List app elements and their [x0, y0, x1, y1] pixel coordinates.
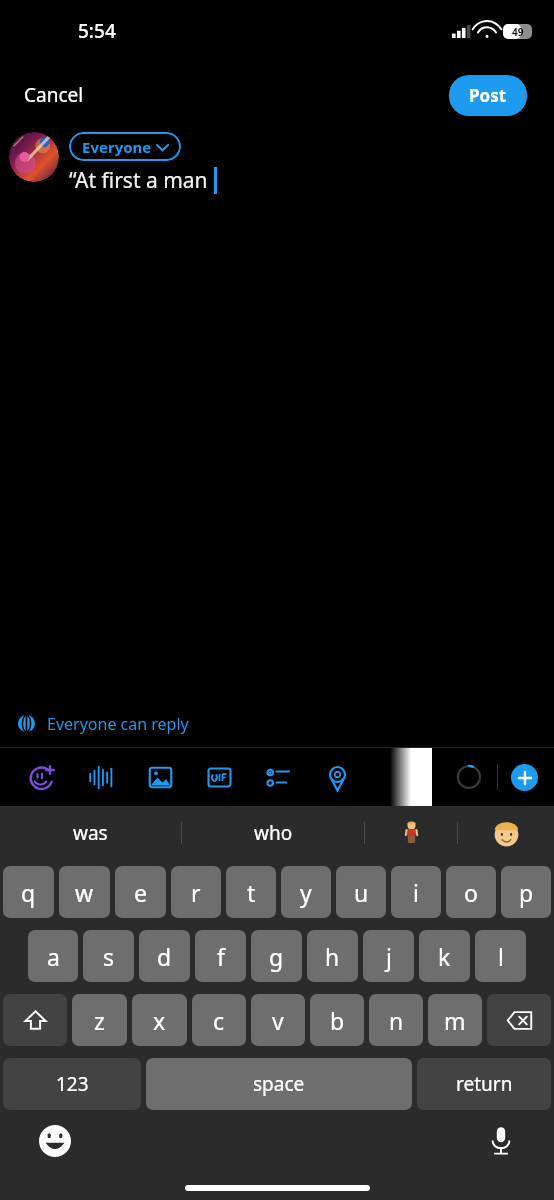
button[interactable]: p [501, 866, 551, 918]
staticText: q [21, 877, 36, 908]
staticText: r [191, 877, 201, 908]
button[interactable]: Shift [3, 994, 67, 1046]
button[interactable]: a [28, 930, 78, 982]
staticText: s [103, 941, 115, 972]
staticText: t [247, 877, 256, 908]
staticText: e [134, 877, 147, 908]
button[interactable]: r [171, 866, 221, 918]
button[interactable]: Cancel [0, 74, 96, 116]
button[interactable]: Add post [511, 764, 538, 791]
staticText: l [498, 941, 504, 972]
staticText: Everyone can reply [47, 713, 189, 735]
staticText: Post [469, 84, 507, 107]
staticText: “At first a man [69, 166, 208, 195]
staticText: j [386, 941, 392, 972]
staticText: f [217, 941, 225, 972]
button[interactable]: f [195, 930, 246, 982]
staticText: u [354, 877, 369, 908]
button[interactable]: i [391, 866, 441, 918]
button[interactable]: Post [449, 75, 527, 116]
button[interactable]: v [251, 994, 305, 1046]
button[interactable]: Backspace [487, 994, 551, 1046]
staticText: space [253, 1071, 305, 1097]
staticText: c [213, 1005, 225, 1036]
staticText: Everyone [82, 137, 152, 157]
staticText: d [157, 941, 172, 972]
button[interactable]: t [226, 866, 276, 918]
button[interactable]: Emoji reaction [13, 748, 72, 806]
button[interactable]: j [363, 930, 414, 982]
button[interactable]: u [336, 866, 386, 918]
button[interactable]: who [182, 806, 364, 860]
button[interactable]: w [59, 866, 110, 918]
button[interactable]: GIF [190, 748, 249, 806]
staticText: b [330, 1005, 345, 1036]
staticText: h [325, 941, 340, 972]
button[interactable]: Voice input [484, 1124, 518, 1158]
staticText: a [47, 941, 60, 972]
button[interactable]: l [475, 930, 526, 982]
staticText: 123 [56, 1071, 89, 1097]
button[interactable]: Voice [72, 748, 131, 806]
button[interactable]: z [72, 994, 127, 1046]
button[interactable]: s [83, 930, 134, 982]
button[interactable]: e [115, 866, 166, 918]
button[interactable]: Character count [452, 760, 486, 794]
button[interactable] [458, 806, 554, 860]
staticText: z [94, 1005, 105, 1036]
button[interactable]: was [0, 806, 181, 860]
button[interactable]: d [139, 930, 190, 982]
button[interactable]: Location [308, 748, 367, 806]
button[interactable]: return [417, 1058, 551, 1110]
staticText: Cancel [24, 82, 84, 108]
button[interactable]: q [3, 866, 54, 918]
staticText: m [444, 1005, 466, 1036]
button[interactable]: n [369, 994, 423, 1046]
staticText: i [413, 877, 419, 908]
staticText: v [272, 1005, 284, 1036]
button[interactable]: k [419, 930, 470, 982]
staticText: was [73, 820, 108, 846]
button[interactable]: h [307, 930, 358, 982]
staticText: p [519, 877, 534, 908]
button[interactable]: Everyone can reply [0, 700, 554, 747]
button[interactable]: c [192, 994, 246, 1046]
staticText: g [269, 941, 284, 972]
staticText: w [75, 877, 94, 908]
button[interactable]: Poll [249, 748, 308, 806]
button[interactable]: x [132, 994, 187, 1046]
button[interactable]: Profile picture [9, 132, 59, 182]
button[interactable]: o [446, 866, 496, 918]
staticText: k [438, 941, 451, 972]
staticText: who [254, 820, 293, 846]
button[interactable]: g [251, 930, 302, 982]
button[interactable]: Everyone [69, 132, 181, 161]
staticText: 5:54 [78, 18, 116, 44]
button[interactable]: Photo [131, 748, 190, 806]
button[interactable]: m [428, 994, 482, 1046]
button[interactable]: 123 [3, 1058, 141, 1110]
button[interactable]: b [310, 994, 364, 1046]
staticText: y [300, 877, 312, 908]
button[interactable]: space [146, 1058, 412, 1110]
staticText: x [153, 1005, 166, 1036]
staticText: n [389, 1005, 404, 1036]
staticText: o [464, 877, 478, 908]
staticText: return [456, 1071, 513, 1097]
button[interactable]: y [281, 866, 331, 918]
button[interactable]: Emoji keyboard [38, 1124, 72, 1158]
button[interactable] [365, 806, 457, 860]
staticText: 49 [512, 25, 524, 39]
